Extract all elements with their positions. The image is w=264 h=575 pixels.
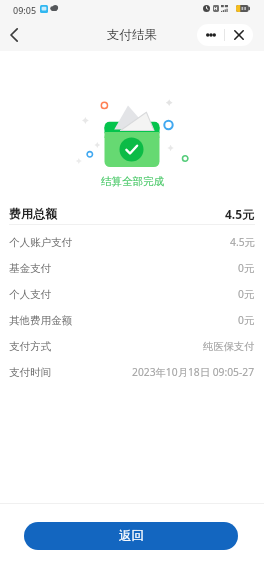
button[interactable]: Close: [225, 24, 253, 46]
staticText: 个人账户支付: [9, 236, 72, 249]
staticText: 0元: [238, 287, 255, 301]
staticText: 支付时间: [9, 366, 51, 379]
staticText: 其他费用金额: [9, 314, 72, 327]
staticText: 个人支付: [9, 288, 51, 301]
staticText: 2023年10月18日 09:05-27: [132, 365, 255, 379]
staticText: 纯医保支付: [203, 340, 255, 353]
staticText: 支付结果: [107, 27, 157, 43]
button[interactable]: More options: [197, 24, 224, 46]
staticText: 费用总额: [9, 206, 57, 221]
staticText: 09:05: [13, 4, 37, 16]
button[interactable]: 返回: [24, 522, 238, 550]
staticText: 支付方式: [9, 340, 51, 353]
staticText: 基金支付: [9, 262, 51, 275]
staticText: 结算全部完成: [101, 175, 164, 188]
button[interactable]: Back: [0, 19, 28, 51]
staticText: 返回: [119, 528, 144, 544]
staticText: 0元: [238, 261, 255, 275]
staticText: 0元: [238, 313, 255, 327]
staticText: 4.5元: [230, 235, 255, 249]
staticText: 4.5元: [225, 206, 255, 222]
